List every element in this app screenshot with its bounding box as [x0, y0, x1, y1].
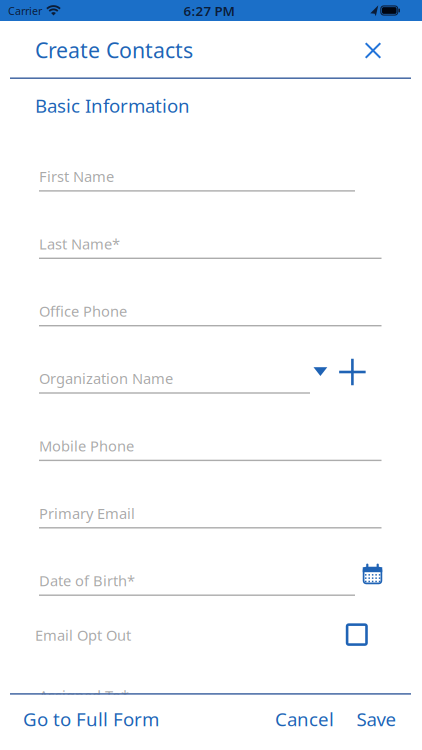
staticText: Email Opt Out	[35, 625, 131, 645]
button[interactable]: Mobile Phone	[39, 435, 381, 468]
button[interactable]: Date of Birth*	[39, 570, 355, 603]
staticText: Date of Birth*	[39, 571, 135, 590]
staticText: Cancel	[275, 707, 334, 731]
button[interactable]: Last Name*	[39, 233, 381, 266]
button[interactable]: Select organization	[313, 367, 327, 376]
button[interactable]: Close	[358, 35, 388, 65]
button[interactable]: Save	[338, 702, 414, 736]
button[interactable]: Email Opt Out	[35, 618, 368, 652]
button[interactable]: Add organization	[339, 358, 366, 385]
staticText: Office Phone	[39, 301, 127, 321]
button[interactable]: Pick date	[361, 562, 383, 584]
staticText: Mobile Phone	[39, 436, 134, 456]
button[interactable]: Cancel	[256, 702, 352, 736]
button[interactable]: Primary Email	[39, 502, 381, 535]
button[interactable]: First Name	[39, 165, 355, 198]
staticText: Save	[356, 707, 396, 731]
button[interactable]: Organization Name	[39, 367, 310, 400]
staticText: Basic Information	[35, 93, 190, 118]
button[interactable]: Go to Full Form	[23, 702, 193, 736]
staticText: First Name	[39, 167, 114, 186]
staticText: Create Contacts	[35, 36, 193, 64]
staticText: Carrier	[8, 4, 42, 18]
staticText: Primary Email	[39, 503, 135, 523]
button[interactable]: Office Phone	[39, 300, 381, 333]
staticText: Go to Full Form	[23, 707, 159, 731]
staticText: Organization Name	[39, 369, 173, 388]
staticText: 6:27 PM	[183, 2, 234, 20]
staticText: Assigned To*	[39, 686, 129, 705]
staticText: Last Name*	[39, 234, 120, 253]
